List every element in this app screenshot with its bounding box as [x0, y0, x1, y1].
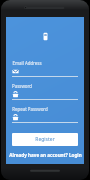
staticText: Repeat Password	[12, 106, 48, 112]
staticText: Email Address	[12, 60, 42, 66]
staticText: Password	[12, 83, 32, 89]
button[interactable]: Password	[12, 83, 78, 100]
staticText: Register	[35, 136, 55, 143]
button[interactable]: Register	[12, 133, 78, 146]
staticText: Already have an account? Login	[9, 152, 82, 158]
button[interactable]: Already have an account? Login	[6, 146, 84, 164]
button[interactable]: Repeat Password	[12, 106, 78, 123]
other: App logo	[40, 31, 51, 42]
button[interactable]: Email Address	[12, 60, 78, 77]
